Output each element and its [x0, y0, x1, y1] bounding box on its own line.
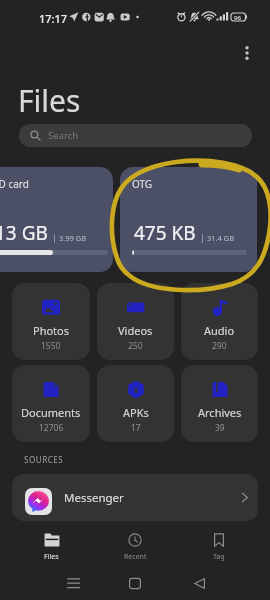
button[interactable]: Audio: [181, 283, 258, 360]
button[interactable]: Archives: [181, 365, 258, 442]
staticText: Videos: [118, 323, 153, 338]
button[interactable]: Search: [19, 124, 252, 147]
staticText: Files: [18, 80, 81, 121]
button[interactable]: Photos: [12, 283, 90, 360]
staticText: Files: [44, 552, 59, 562]
staticText: 17: [131, 422, 141, 434]
button[interactable]: Messenger: [12, 474, 258, 521]
staticText: 17:17: [39, 11, 68, 26]
staticText: 475 KB: [134, 220, 196, 246]
staticText: 250: [128, 340, 143, 352]
staticText: Documents: [21, 405, 81, 420]
button[interactable]: Tag: [177, 529, 261, 565]
staticText: SOURCES: [24, 454, 64, 465]
staticText: Messenger: [64, 490, 124, 506]
staticText: 290: [212, 340, 227, 352]
staticText: Audio: [204, 323, 235, 338]
staticText: 96: [234, 14, 241, 22]
staticText: 13 GB: [0, 220, 48, 246]
staticText: Tag: [213, 552, 225, 562]
staticText: 31.4 GB: [207, 233, 235, 243]
staticText: Archives: [198, 405, 242, 420]
button[interactable]: Recent: [93, 529, 177, 565]
button[interactable]: OTG: [120, 167, 257, 272]
staticText: Photos: [33, 323, 70, 338]
staticText: 1550: [41, 340, 61, 352]
staticText: 39: [215, 422, 225, 434]
staticText: Search: [48, 129, 79, 142]
button[interactable]: Videos: [97, 283, 174, 360]
staticText: 3.99 GB: [59, 233, 87, 243]
button[interactable]: Files: [10, 529, 93, 565]
staticText: OTG: [132, 177, 153, 191]
staticText: 12706: [39, 422, 64, 434]
staticText: APKs: [123, 405, 149, 420]
button[interactable]: SD card: [0, 167, 113, 272]
button[interactable]: APKs: [97, 365, 174, 442]
button[interactable]: Documents: [12, 365, 90, 442]
staticText: Recent: [124, 552, 147, 562]
button[interactable]: More options: [236, 42, 258, 64]
staticText: SD card: [0, 177, 29, 191]
